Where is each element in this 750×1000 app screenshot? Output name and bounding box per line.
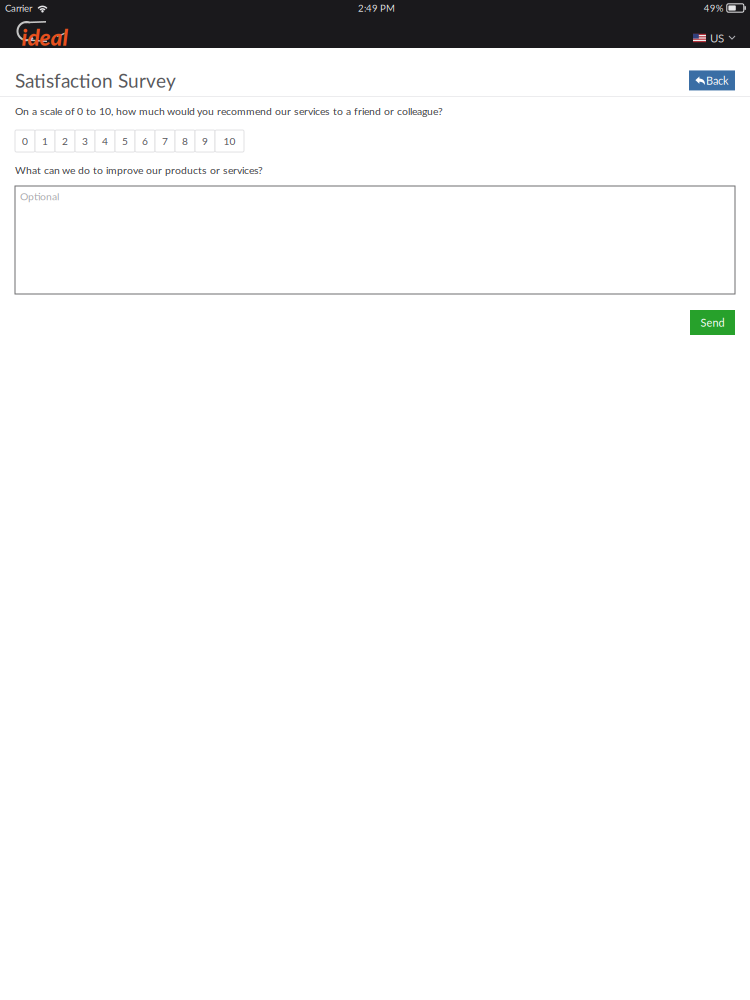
staticText: 49% <box>704 2 724 14</box>
button[interactable]: Back <box>689 70 735 90</box>
button[interactable]: 3 <box>75 130 95 152</box>
staticText: 10 <box>223 135 235 147</box>
staticText: Send <box>700 316 724 329</box>
button[interactable]: ideal home <box>14 20 66 43</box>
staticText: Satisfaction Survey <box>15 69 176 92</box>
button[interactable]: 9 <box>195 130 215 152</box>
staticText: Back <box>706 74 729 87</box>
button[interactable]: 8 <box>175 130 195 152</box>
button[interactable]: 4 <box>95 130 115 152</box>
button[interactable]: 0 <box>15 130 35 152</box>
staticText: ideal <box>21 23 68 51</box>
staticText: Optional <box>20 190 59 202</box>
staticText: 0 <box>22 135 28 147</box>
button[interactable]: Region: United States <box>693 26 736 38</box>
staticText: 2:49 PM <box>358 2 395 14</box>
staticText: 1 <box>42 135 48 147</box>
staticText: 7 <box>162 135 168 147</box>
staticText: 4 <box>102 135 108 147</box>
staticText: 8 <box>182 135 188 147</box>
staticText: 6 <box>142 135 148 147</box>
staticText: 5 <box>122 135 128 147</box>
button[interactable]: 1 <box>35 130 55 152</box>
staticText: 3 <box>82 135 88 147</box>
button[interactable]: 5 <box>115 130 135 152</box>
button[interactable]: 6 <box>135 130 155 152</box>
button[interactable]: 7 <box>155 130 175 152</box>
staticText: 2 <box>62 135 68 147</box>
button[interactable]: 2 <box>55 130 75 152</box>
staticText: US <box>710 31 724 45</box>
staticText: On a scale of 0 to 10, how much would yo… <box>15 105 443 117</box>
staticText: Carrier <box>5 2 32 14</box>
button[interactable]: 10 <box>215 130 244 152</box>
button[interactable]: Send <box>690 310 735 335</box>
staticText: 9 <box>202 135 208 147</box>
staticText: What can we do to improve our products o… <box>15 164 263 176</box>
